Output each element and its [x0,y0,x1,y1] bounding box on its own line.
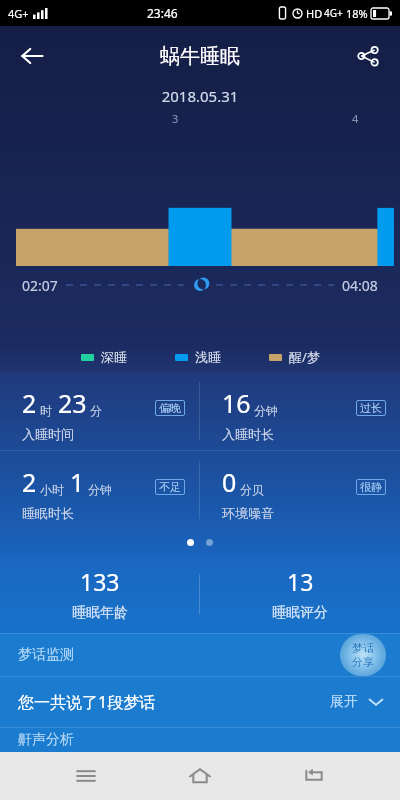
button[interactable]: 梦话监测 [0,634,400,676]
staticText: 02:07 [22,276,58,295]
staticText: 入睡时间 [22,426,74,442]
staticText: 分钟 [254,403,278,418]
staticText: 分享 [352,655,374,669]
staticText: 您一共说了1段梦话 [18,691,156,713]
staticText: 深睡 [101,349,127,365]
staticText: 梦话 [352,641,374,655]
button[interactable]: 2 [0,372,199,450]
staticText: 4G+ [324,6,343,20]
staticText: 睡眠年龄 [72,604,128,622]
staticText: 2018.05.31 [0,86,400,106]
button[interactable]: 133 [0,555,199,633]
staticText: 1 [70,465,85,499]
button[interactable]: 0 [200,451,400,529]
button[interactable]: Share [346,34,390,78]
staticText: 2 [22,465,37,499]
staticText: 23:46 [147,5,178,21]
staticText: 睡眠评分 [272,604,328,622]
button[interactable]: 鼾声分析 [0,728,400,752]
staticText: 18% [346,6,368,21]
staticText: 醒/梦 [289,348,320,366]
staticText: 时 [40,403,52,418]
button[interactable]: 16 [200,372,400,450]
staticText: 展开 [330,693,358,711]
staticText: 偏晚 [159,401,181,415]
staticText: 2 [22,386,37,420]
button[interactable]: 2 [0,451,199,529]
staticText: 蜗牛睡眠 [160,44,240,69]
staticText: 很静 [360,480,382,494]
staticText: 环境噪音 [222,505,274,521]
staticText: 分 [90,403,102,418]
button[interactable]: 您一共说了1段梦话 [0,677,400,727]
button[interactable]: Home [172,752,228,800]
staticText: 梦话监测 [18,646,74,664]
staticText: 23 [58,386,87,420]
button[interactable]: 梦话分享 [340,634,386,676]
staticText: 不足 [159,480,181,494]
staticText: 浅睡 [195,349,221,365]
staticText: 04:08 [342,276,378,295]
staticText: 小时 [40,482,64,497]
button[interactable]: Menu [58,752,114,800]
staticText: 3 [172,111,179,126]
button[interactable]: Back [286,752,342,800]
button[interactable]: 13 [200,555,400,633]
staticText: 分贝 [240,482,264,497]
staticText: 13 [287,566,314,597]
staticText: 133 [80,566,120,597]
staticText: 0 [222,465,237,499]
staticText: 16 [222,386,251,420]
staticText: 分钟 [88,482,112,497]
staticText: 睡眠时长 [22,505,74,521]
staticText: 4G+ [8,6,29,21]
staticText: 过长 [360,401,382,415]
staticText: 4 [352,111,359,126]
staticText: HD [306,6,323,21]
staticText: 鼾声分析 [18,731,74,749]
button[interactable]: Back [10,34,54,78]
staticText: 入睡时长 [222,426,274,442]
